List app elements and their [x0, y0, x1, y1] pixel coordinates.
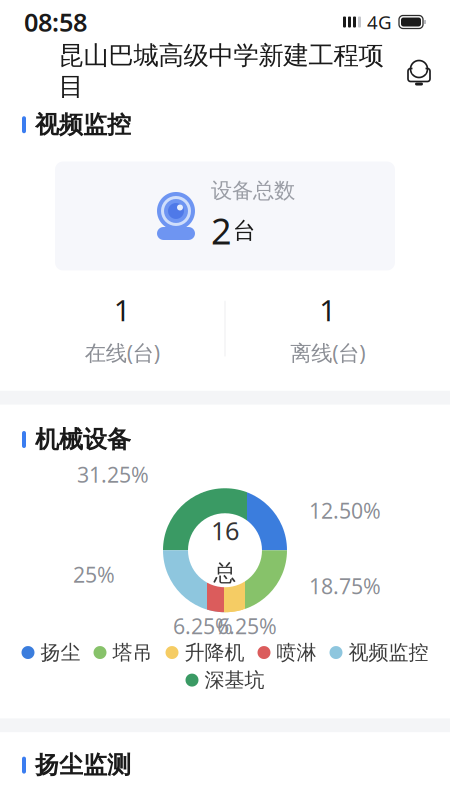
- staticText: 6.25%: [217, 612, 277, 640]
- staticText: 2: [211, 207, 232, 254]
- staticText: 4G: [367, 10, 392, 34]
- staticText: 16: [211, 513, 239, 547]
- staticText: 喷淋: [276, 640, 316, 665]
- staticText: 31.25%: [77, 460, 149, 489]
- button[interactable]: 1: [225, 290, 430, 367]
- staticText: 设备总数: [211, 177, 295, 204]
- staticText: 深基坑: [204, 668, 264, 692]
- button[interactable]: 1: [20, 290, 224, 367]
- button[interactable]: 通知: [396, 48, 442, 94]
- staticText: 总: [213, 559, 236, 587]
- staticText: 离线(台): [290, 338, 365, 367]
- staticText: 塔吊: [112, 640, 152, 665]
- staticText: 18.75%: [309, 572, 381, 600]
- staticText: 在线(台): [85, 338, 160, 367]
- staticText: 12.50%: [309, 496, 381, 525]
- staticText: 扬尘: [40, 640, 80, 665]
- staticText: 08:58: [24, 5, 87, 39]
- staticText: 1: [319, 290, 336, 329]
- staticText: 昆山巴城高级中学新建工程项目: [58, 40, 383, 102]
- staticText: 扬尘监测: [35, 750, 131, 780]
- staticText: 机械设备: [35, 425, 131, 454]
- staticText: 台: [233, 217, 256, 244]
- staticText: 升降机: [184, 640, 244, 665]
- staticText: 视频监控: [348, 640, 428, 665]
- staticText: 1: [114, 290, 131, 329]
- staticText: 25%: [73, 560, 115, 589]
- staticText: 视频监控: [35, 110, 131, 139]
- staticText: 6.25%: [173, 612, 233, 640]
